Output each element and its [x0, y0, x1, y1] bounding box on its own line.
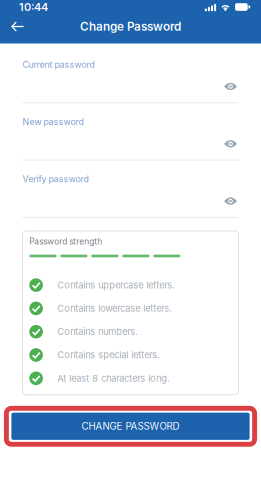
staticText: CHANGE PASSWORD: [81, 420, 179, 432]
staticText: Contains numbers.: [57, 326, 138, 337]
button[interactable]: Show password: [223, 196, 238, 206]
staticText: At least 8 characters long.: [57, 373, 170, 384]
staticText: Contains special letters.: [57, 349, 160, 360]
staticText: Current password: [22, 59, 94, 70]
button[interactable]: Show password: [223, 81, 238, 92]
staticText: Contains lowercase letters.: [57, 303, 172, 314]
staticText: New password: [22, 116, 83, 127]
button[interactable]: Show password: [223, 138, 238, 149]
button[interactable]: CHANGE PASSWORD: [11, 413, 250, 440]
button[interactable]: Back: [7, 17, 28, 36]
staticText: Change Password: [80, 19, 181, 34]
staticText: Verify password: [22, 174, 88, 184]
staticText: Password strength: [29, 236, 102, 246]
staticText: 10:44: [19, 0, 48, 14]
staticText: Contains uppercase letters.: [57, 279, 175, 291]
